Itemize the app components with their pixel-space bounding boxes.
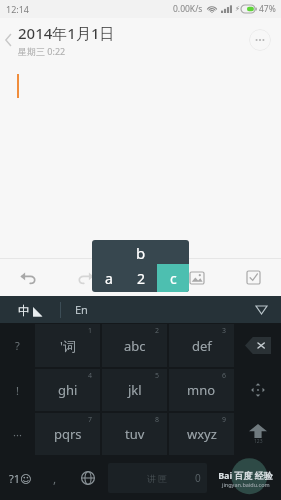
button[interactable]: 讲 匣 [108,463,207,493]
button[interactable]: Checklist [225,259,281,296]
staticText: 讲 匣 [147,472,168,484]
button[interactable]: '词 [35,324,100,367]
button[interactable]: Insert image [169,259,225,296]
staticText: 2014年1月1日 [18,23,115,43]
staticText: 0 [195,471,201,485]
button[interactable]: ?1☺ [0,456,40,500]
staticText: 9 [222,415,227,425]
staticText: 7 [88,415,93,425]
staticText: 3 [222,326,227,336]
staticText: 2 [155,326,160,336]
staticText: En [75,302,88,317]
button[interactable]: ! [0,368,34,412]
staticText: 4 [88,371,93,381]
staticText: ? [15,338,20,353]
staticText: 0.00K/s [173,3,203,15]
button[interactable]: En [75,296,241,323]
staticText: jingyan.baidu.com [222,481,270,488]
button[interactable]: b [92,240,189,292]
staticText: 1 [88,326,93,336]
button[interactable]: Shift [238,415,278,453]
staticText: 47% [259,3,276,15]
staticText: mno [187,381,216,399]
staticText: ?1☺ [9,471,32,486]
staticText: 星期三 0:22 [18,45,66,57]
button[interactable]: Baidu watermark [209,456,281,500]
staticText: pqrs [54,425,82,443]
staticText: tuv [125,425,145,443]
button[interactable]: mno [169,369,234,411]
staticText: 2 [137,269,146,288]
staticText: '词 [60,337,76,355]
button[interactable]: ? [0,323,34,368]
button[interactable]: Backspace [238,326,278,365]
staticText: ghi [58,381,78,399]
button[interactable]: pqrs [35,413,100,455]
staticText: c [170,269,177,288]
button[interactable]: Insert text [113,259,169,296]
staticText: 5 [155,371,160,381]
staticText: 12:14 [6,3,30,15]
button[interactable]: jkl [102,369,167,411]
button[interactable]: Back [0,18,16,62]
staticText: wxyz [187,425,217,443]
button[interactable]: , [40,456,70,500]
staticText: a [105,269,113,288]
button[interactable]: wxyz [169,413,234,455]
button[interactable]: More options [249,29,271,51]
staticText: 123 [254,438,263,445]
staticText: ! [16,383,19,398]
staticText: ··· [13,427,22,442]
staticText: abc [124,337,146,355]
button[interactable]: Change language [70,456,106,500]
staticText: b [136,243,146,263]
staticText: ⚡ [235,5,240,13]
staticText: 8 [155,415,160,425]
staticText: 中 ◣ [18,302,43,318]
button[interactable]: ghi [35,369,100,411]
button[interactable]: Move cursor [238,371,278,409]
button[interactable]: tuv [102,413,167,455]
staticText: , [53,470,57,486]
button[interactable]: 中 ◣ [0,296,60,323]
button[interactable]: Undo [0,259,57,296]
button[interactable]: abc [102,324,167,367]
button[interactable]: def [169,324,234,367]
staticText: Bai 百度 经验 [218,469,273,481]
button[interactable]: Hide keyboard [241,296,281,323]
button[interactable]: Redo [57,259,113,296]
button[interactable]: ··· [0,412,34,456]
staticText: def [192,337,212,355]
staticText: 6 [222,371,227,381]
staticText: jkl [128,381,142,399]
